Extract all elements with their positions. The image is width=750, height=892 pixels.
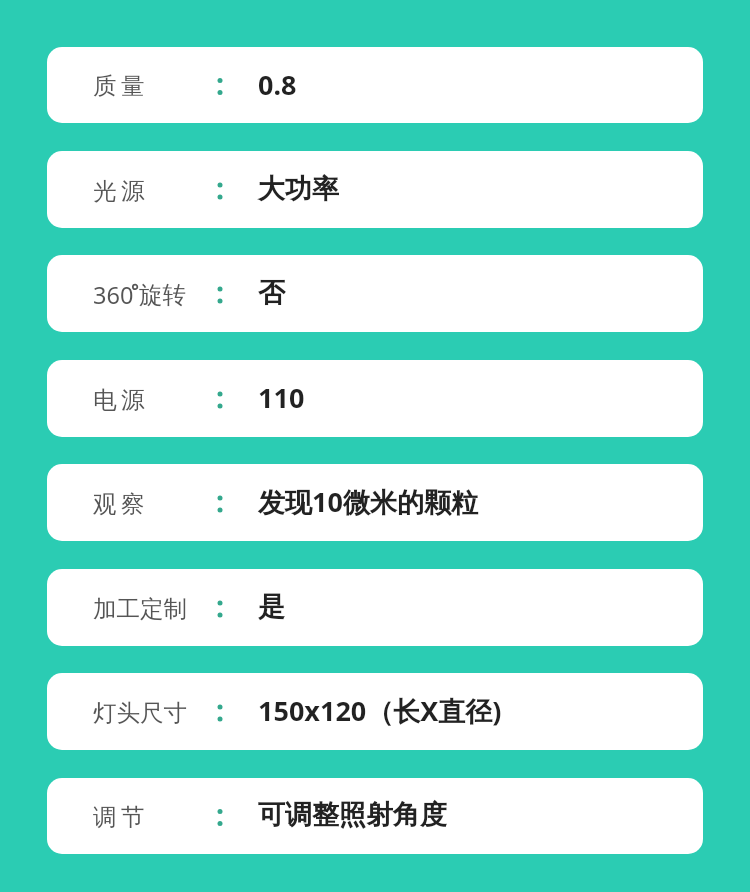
staticText: 否 [258,276,285,310]
staticText: 360 [93,279,134,311]
staticText: 0.8 [258,66,297,103]
staticText: 大功率 [258,172,339,206]
button[interactable]: 加工定制 [47,569,703,646]
staticText: 质量 [93,71,150,101]
staticText: 110 [258,379,305,416]
button[interactable]: 光源 [47,151,703,228]
staticText: 光源 [93,176,150,206]
button[interactable]: 观察 [47,464,703,541]
button[interactable]: 灯头尺寸 [47,673,703,750]
staticText: 是 [258,590,285,624]
staticText: 发现10微米的颗粒 [258,483,478,520]
staticText: 可调整照射角度 [258,798,447,832]
staticText: 观察 [93,489,150,519]
button[interactable]: 调节 [47,778,703,854]
button[interactable]: 质量 [47,47,703,123]
staticText: 灯头尺寸 [93,698,187,728]
button[interactable]: 电源 [47,360,703,437]
staticText: 调节 [93,802,150,832]
button[interactable]: 360 [47,255,703,332]
staticText: 电源 [93,385,150,415]
staticText: 旋转 [139,280,186,310]
staticText: 加工定制 [93,594,187,624]
staticText: 150x120（长X直径) [258,692,502,729]
